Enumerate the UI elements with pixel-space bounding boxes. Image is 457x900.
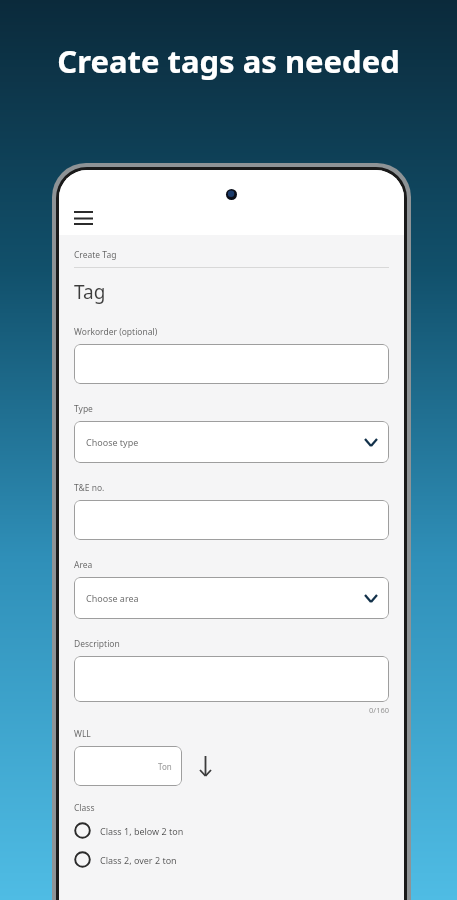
- staticText: Tag: [74, 279, 106, 305]
- staticText: Ton: [158, 761, 172, 772]
- staticText: Choose area: [86, 592, 139, 604]
- staticText: Area: [74, 559, 93, 571]
- staticText: Class 2, over 2 ton: [100, 854, 177, 866]
- button[interactable]: Class 2, over 2 ton: [74, 849, 389, 870]
- staticText: Workorder (optional): [74, 326, 158, 338]
- button[interactable]: Class 1, below 2 ton: [74, 820, 389, 841]
- staticText: Create Tag: [74, 249, 117, 261]
- button[interactable]: Choose area: [74, 577, 389, 619]
- staticText: Create tags as needed: [0, 40, 457, 82]
- button[interactable]: [74, 500, 389, 540]
- button[interactable]: [74, 656, 389, 702]
- staticText: Type: [74, 403, 93, 415]
- staticText: Class: [74, 802, 95, 814]
- button[interactable]: Open navigation menu: [68, 203, 98, 233]
- button[interactable]: [74, 344, 389, 384]
- staticText: WLL: [74, 728, 91, 740]
- button[interactable]: Ton: [74, 746, 182, 786]
- staticText: 0/160: [74, 705, 389, 715]
- staticText: Choose type: [86, 436, 139, 448]
- staticText: Class 1, below 2 ton: [100, 825, 184, 837]
- button[interactable]: Choose type: [74, 421, 389, 463]
- button[interactable]: Convert weight unit: [190, 751, 220, 781]
- staticText: Description: [74, 638, 120, 650]
- staticText: T&E no.: [74, 482, 105, 494]
